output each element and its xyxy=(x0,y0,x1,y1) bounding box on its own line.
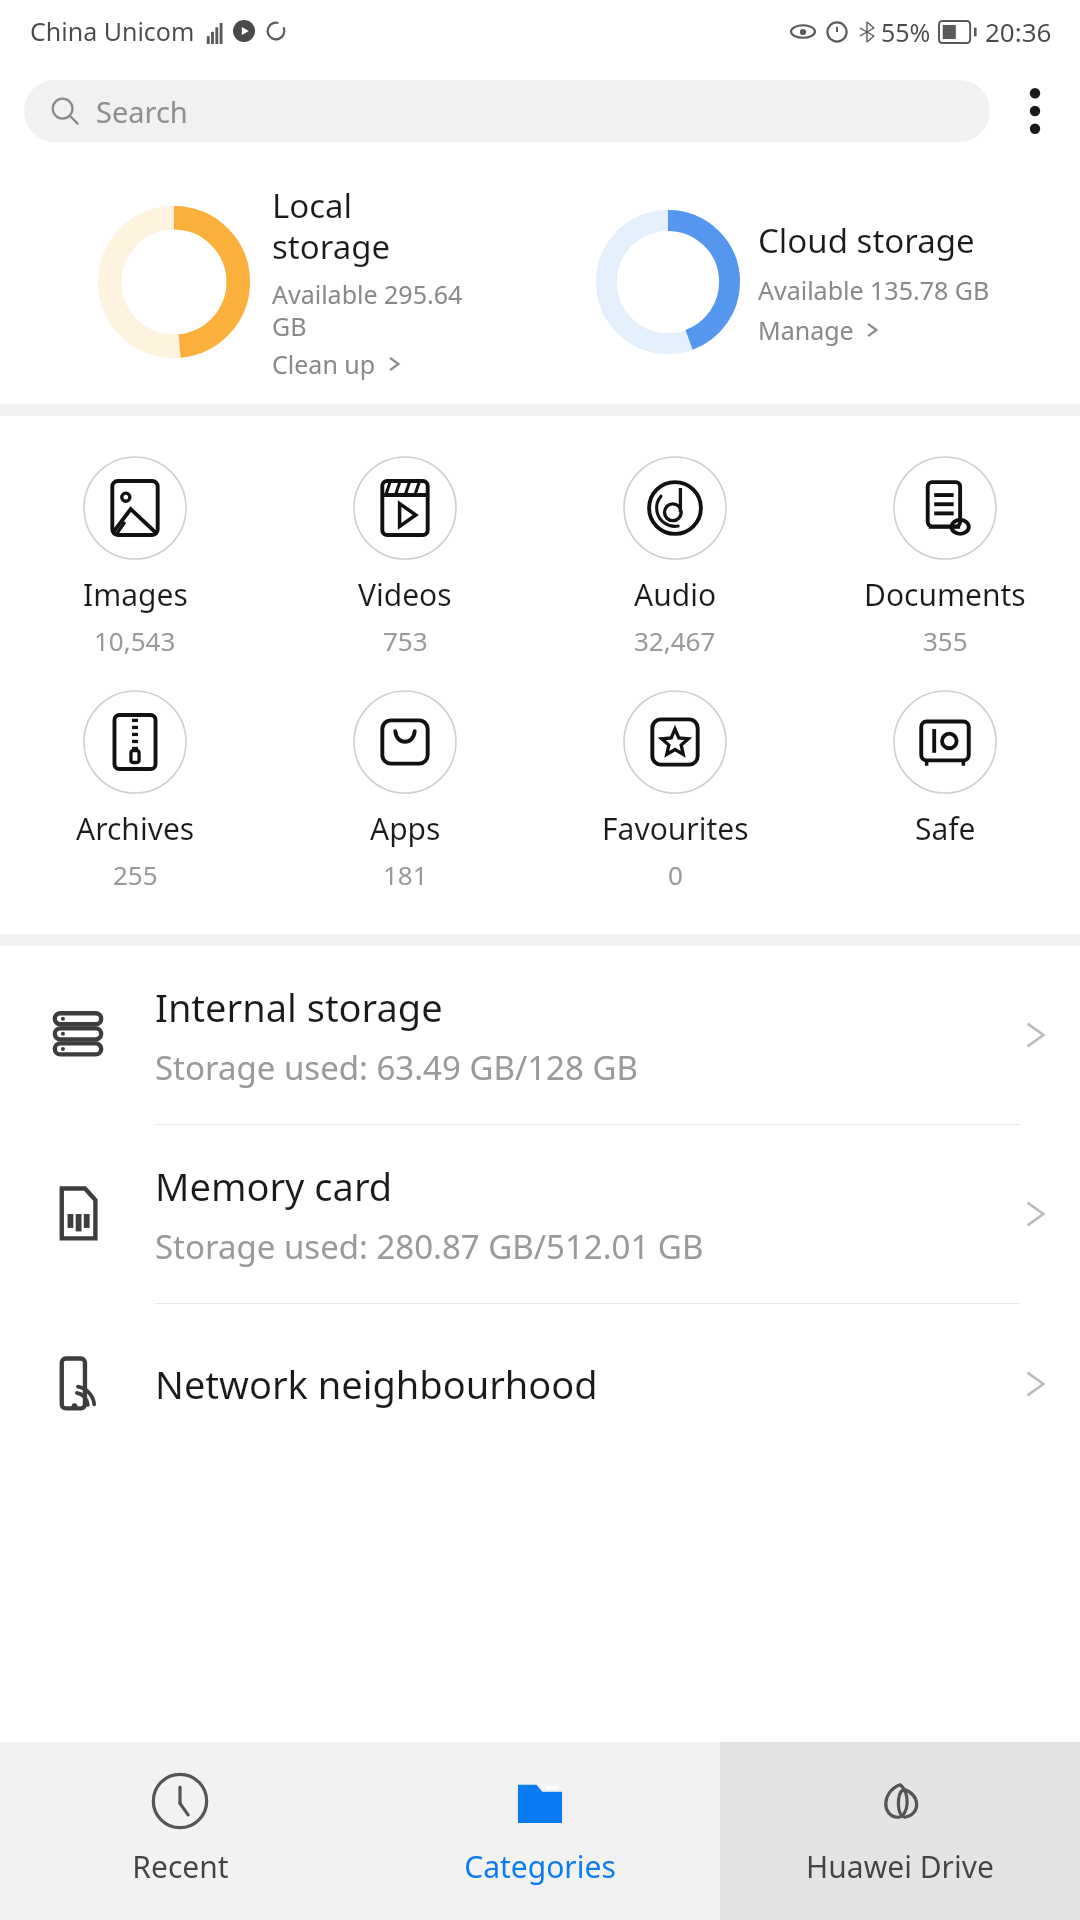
staticText: 20:36 xyxy=(985,14,1052,49)
staticText: 753 xyxy=(383,623,428,658)
button[interactable]: Documents xyxy=(810,452,1080,662)
staticText: Clean up xyxy=(272,347,376,381)
staticText: Memory card xyxy=(155,1160,393,1212)
staticText: Recent xyxy=(132,1846,229,1887)
staticText: Favourites xyxy=(602,808,749,849)
button[interactable] xyxy=(596,210,740,354)
staticText: Huawei Drive xyxy=(806,1846,994,1887)
staticText: China Unicom xyxy=(30,14,195,48)
staticText: Available 295.64 GB xyxy=(272,277,472,343)
button[interactable]: Manage xyxy=(758,313,880,347)
button[interactable]: Videos xyxy=(270,452,540,662)
staticText: Images xyxy=(83,574,188,615)
staticText: Available 135.78 GB xyxy=(758,273,990,307)
staticText: 181 xyxy=(383,857,428,892)
button[interactable]: Apps xyxy=(270,686,540,896)
staticText: Archives xyxy=(76,808,195,849)
button[interactable]: Search xyxy=(24,80,990,142)
staticText: Videos xyxy=(358,574,452,615)
button[interactable] xyxy=(98,206,250,358)
staticText: 355 xyxy=(923,623,968,658)
button[interactable]: More options xyxy=(990,66,1080,156)
staticText: 10,543 xyxy=(94,623,176,658)
staticText: Apps xyxy=(370,808,441,849)
button[interactable]: Favourites xyxy=(540,686,810,896)
staticText: Manage xyxy=(758,313,854,347)
staticText: Cloud storage xyxy=(758,218,975,263)
staticText: Categories xyxy=(464,1846,616,1887)
button[interactable]: Network neighbourhood xyxy=(0,1304,1080,1464)
staticText: Storage used: 280.87 GB/512.01 GB xyxy=(155,1224,704,1269)
button[interactable]: Audio xyxy=(540,452,810,662)
staticText: Safe xyxy=(915,808,976,849)
button[interactable]: Clean up xyxy=(272,347,402,381)
staticText: Documents xyxy=(864,574,1026,615)
button[interactable]: Categories xyxy=(360,1742,720,1920)
button[interactable]: Safe xyxy=(810,686,1080,853)
staticText: 55% xyxy=(881,15,931,49)
staticText: Storage used: 63.49 GB/128 GB xyxy=(155,1045,638,1090)
staticText: 0 xyxy=(668,857,683,892)
staticText: 32,467 xyxy=(634,623,716,658)
button[interactable]: Internal storage xyxy=(0,946,1080,1124)
staticText: Local storage xyxy=(272,183,391,269)
button[interactable]: Memory card xyxy=(0,1125,1080,1303)
button[interactable]: Images xyxy=(0,452,270,662)
button[interactable]: Archives xyxy=(0,686,270,896)
staticText: 255 xyxy=(113,857,158,892)
staticText: Audio xyxy=(634,574,717,615)
button[interactable]: Huawei Drive xyxy=(720,1742,1080,1920)
staticText: Network neighbourhood xyxy=(155,1358,598,1410)
staticText: Internal storage xyxy=(155,981,443,1033)
button[interactable]: Recent xyxy=(0,1742,360,1920)
staticText: Search xyxy=(96,92,188,131)
